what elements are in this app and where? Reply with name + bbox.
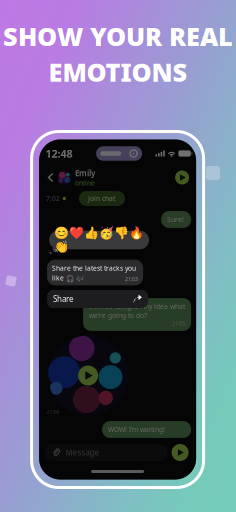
staticText: WOW! I'm waiting! — [108, 425, 165, 434]
staticText: Share the latest tracks you — [52, 264, 136, 272]
staticText: 21:05 — [172, 320, 185, 327]
staticText: Emily — [75, 168, 95, 178]
staticText: 12:48 — [46, 146, 73, 161]
staticText: I'm free tonight. Any idea what we're go… — [89, 302, 185, 320]
staticText: 7:02 — [46, 194, 60, 203]
staticText: EMOTIONS — [48, 55, 187, 89]
staticText: online — [75, 178, 95, 187]
button[interactable]: Attach file — [51, 447, 62, 458]
button[interactable]: Share — [47, 290, 148, 308]
staticText: Sure! — [167, 215, 184, 224]
staticText: Message — [66, 447, 100, 458]
staticText: 21:03 — [125, 275, 138, 282]
staticText: 😊❤️👍🥳👎🔥👏 — [54, 226, 144, 254]
button[interactable]: Back — [44, 167, 57, 187]
button[interactable]: Video call — [175, 170, 189, 184]
staticText: Share — [53, 294, 74, 304]
button[interactable]: Join chat — [79, 191, 125, 206]
button[interactable]: Send — [172, 444, 189, 461]
staticText: like 🎧 🎶 — [52, 273, 84, 282]
staticText: Join chat — [88, 194, 116, 203]
staticText: SHOW YOUR REAL — [3, 19, 233, 53]
staticText: 21:06 — [47, 408, 60, 415]
